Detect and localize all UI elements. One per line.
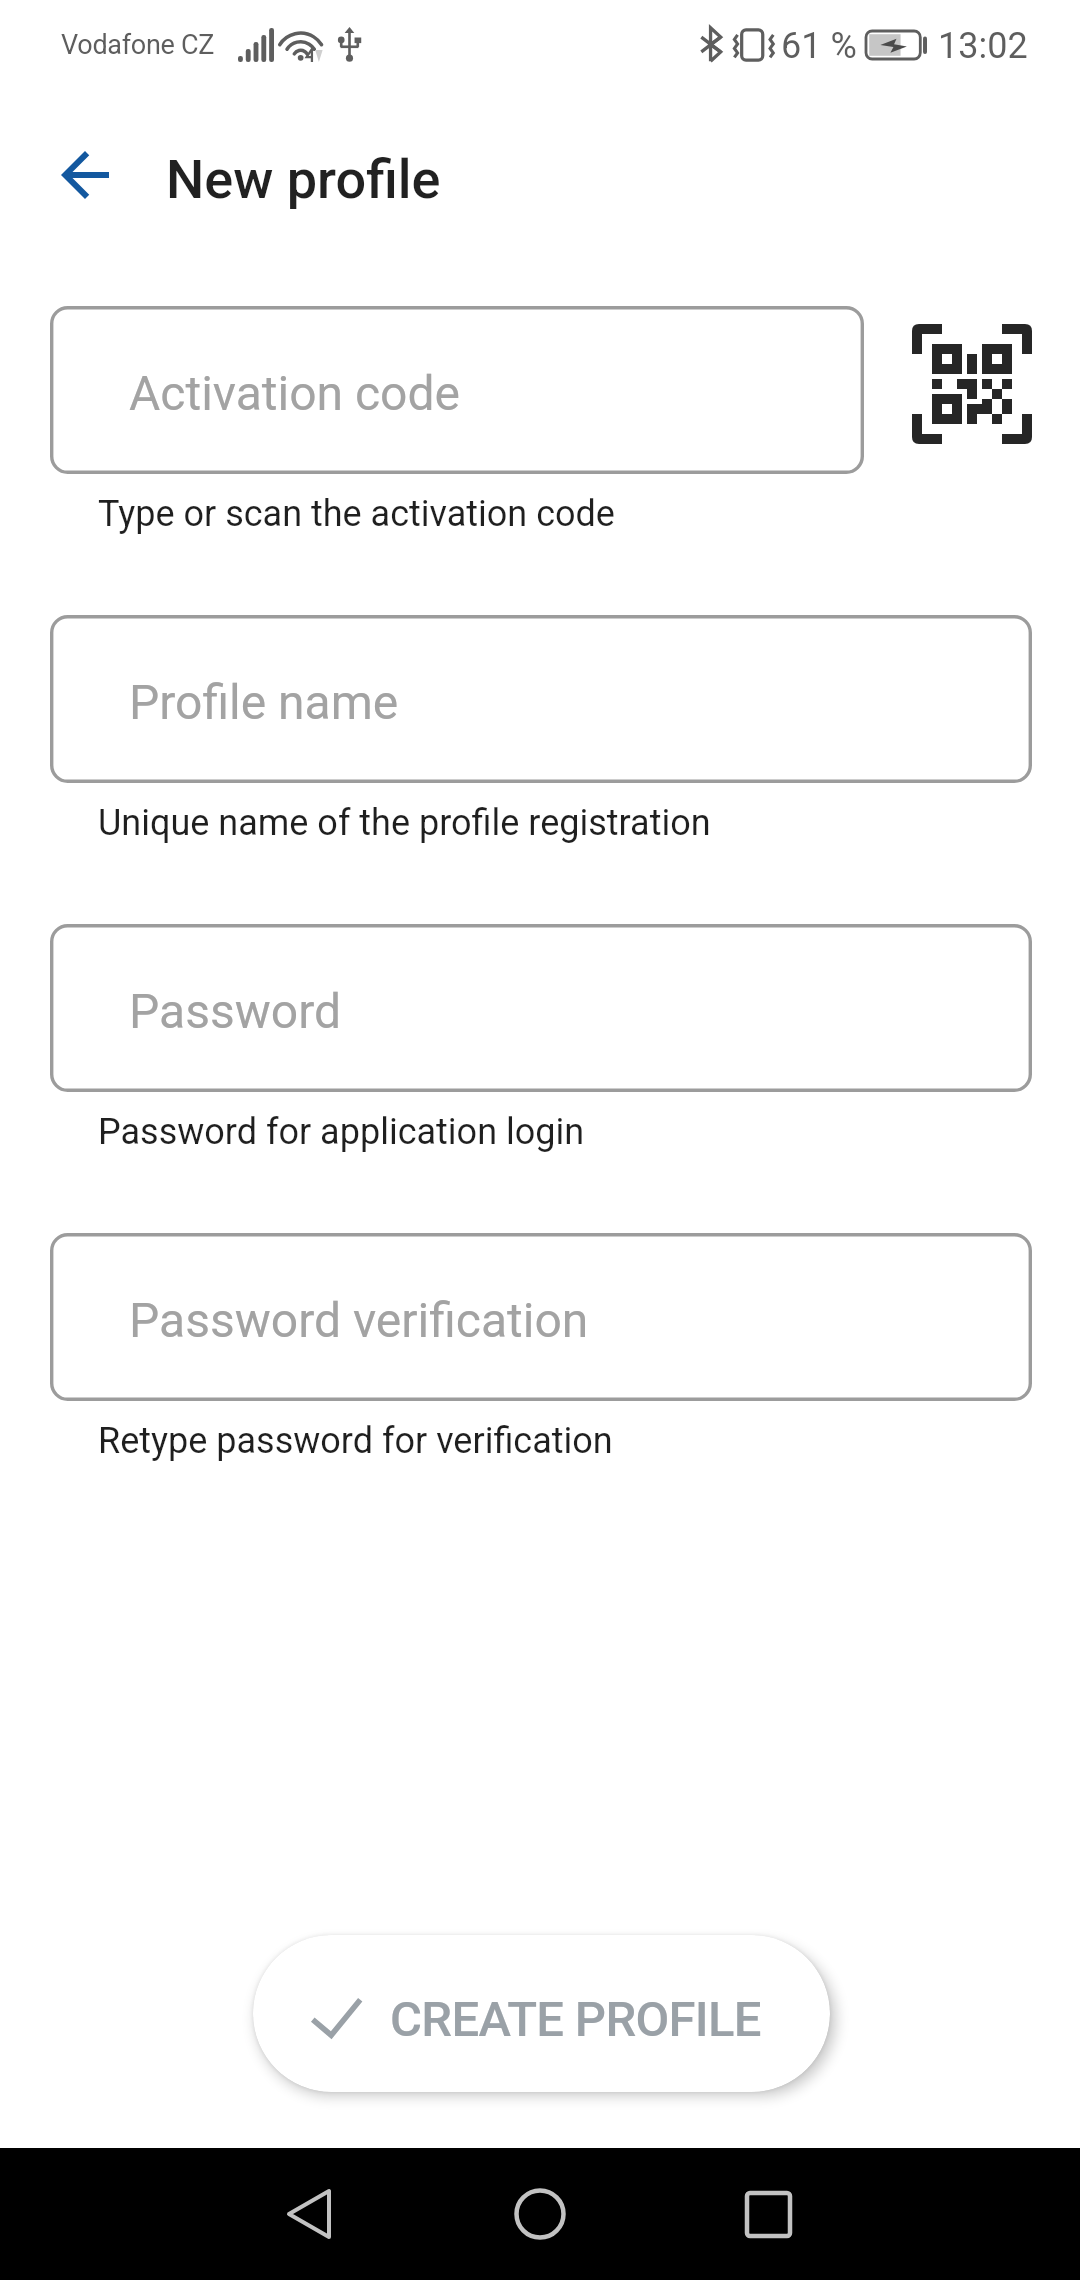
button[interactable]: CREATE PROFILE xyxy=(253,1935,830,2092)
button[interactable]: Activation code xyxy=(50,306,864,474)
button[interactable]: Home xyxy=(492,2166,588,2262)
button[interactable]: Scan QR code xyxy=(912,324,1032,444)
button[interactable]: Profile name xyxy=(50,615,1032,783)
staticText: Password xyxy=(129,983,342,1039)
staticText: Password verification xyxy=(129,1292,589,1348)
button[interactable]: Password xyxy=(50,924,1032,1092)
button[interactable]: Recent apps xyxy=(720,2166,816,2262)
staticText: Password for application login xyxy=(98,1111,585,1153)
staticText: Unique name of the profile registration xyxy=(98,802,711,844)
staticText: Type or scan the activation code xyxy=(98,493,615,535)
button[interactable]: Back xyxy=(37,127,133,223)
staticText: Vodafone CZ xyxy=(61,29,215,61)
staticText: Activation code xyxy=(129,365,461,421)
staticText: CREATE PROFILE xyxy=(390,1991,761,2048)
staticText: Profile name xyxy=(129,674,399,730)
staticText: 13:02 xyxy=(938,25,1028,67)
button[interactable]: Password verification xyxy=(50,1233,1032,1401)
button[interactable]: Back xyxy=(261,2166,357,2262)
staticText: New profile xyxy=(166,148,441,211)
staticText: Retype password for verification xyxy=(98,1420,613,1462)
staticText: 61 % xyxy=(781,25,857,67)
